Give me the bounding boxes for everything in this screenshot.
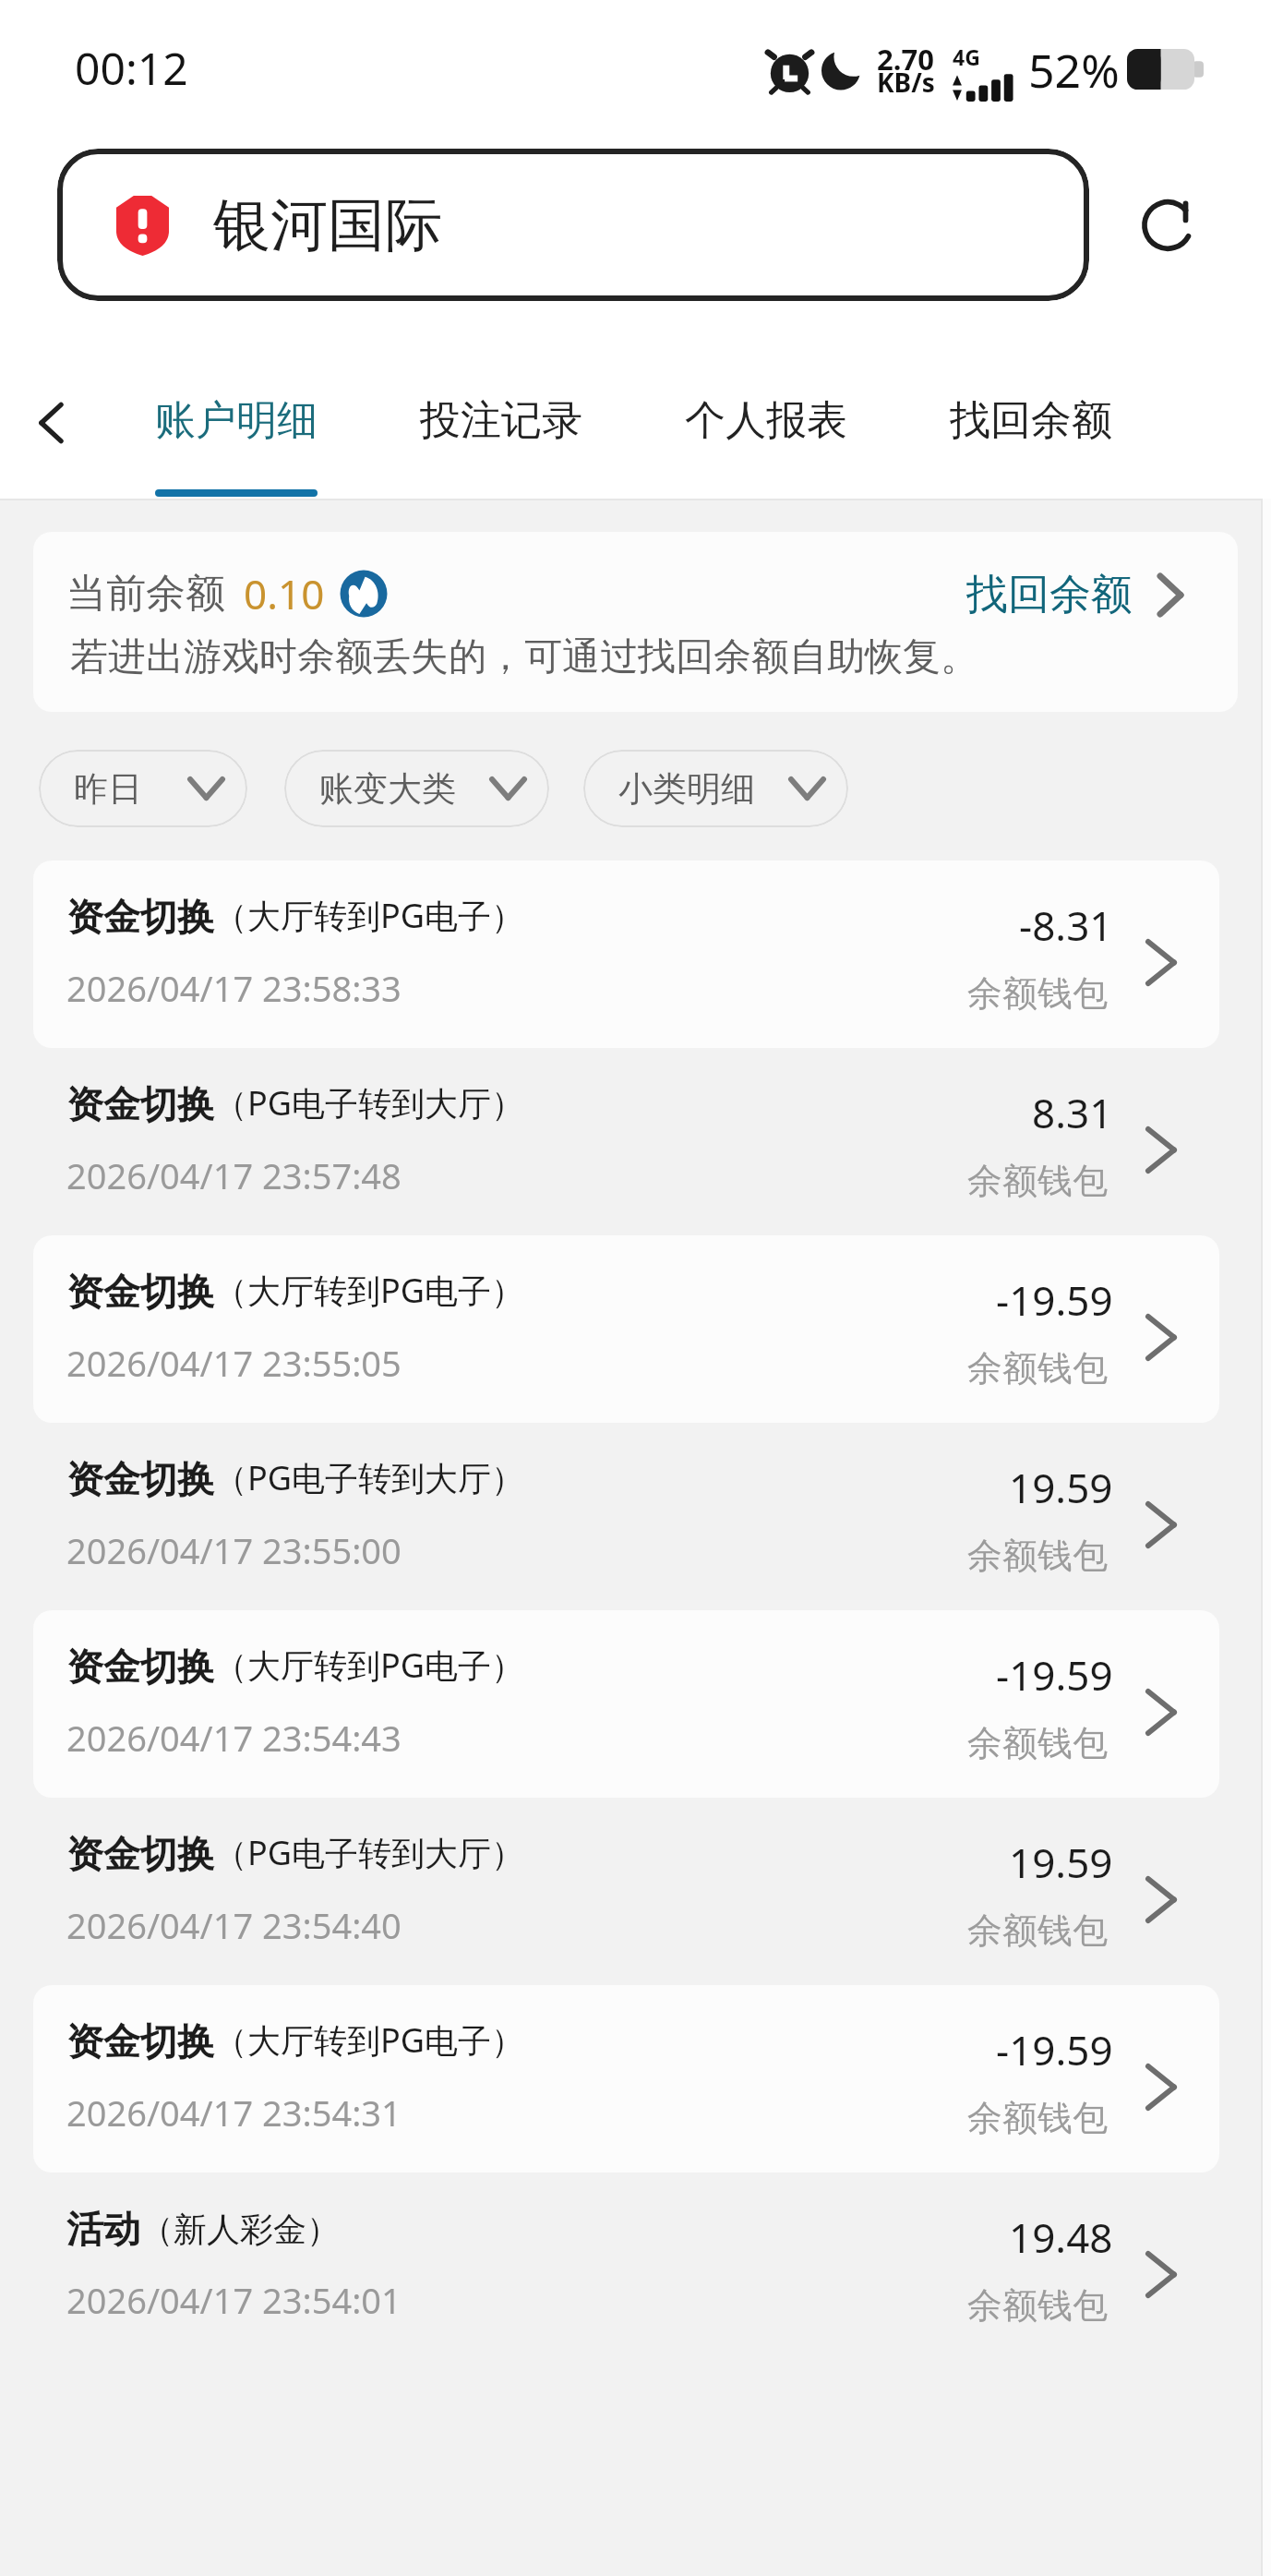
staticText: 若进出游戏时余额丢失的，可通过找回余额自助恢复。 (70, 633, 978, 681)
staticText: 资金切换 (66, 2018, 214, 2064)
staticText: 小类明细 (618, 767, 755, 811)
staticText: 余额钱包 (967, 2283, 1108, 2328)
button[interactable]: 资金切换 (0, 1985, 1271, 2173)
button[interactable]: 活动 (0, 2173, 1271, 2360)
staticText: 当前余额 (66, 569, 225, 619)
staticText: 账户明细 (155, 395, 318, 446)
button[interactable]: 找回余额 (966, 560, 1190, 631)
button[interactable]: 账户明细 (103, 301, 368, 499)
staticText: 资金切换 (66, 1831, 214, 1877)
button[interactable]: 账变大类 (284, 750, 549, 827)
staticText: -19.59 (996, 1272, 1113, 1328)
staticText: 余额钱包 (967, 1908, 1108, 1953)
staticText: 8.31 (1032, 1085, 1113, 1140)
staticText: 0.10 (244, 566, 325, 621)
staticText: -19.59 (996, 2022, 1113, 2077)
button[interactable]: 资金切换 (0, 1798, 1271, 1985)
staticText: 2026/04/17 23:54:40 (66, 1901, 402, 1949)
staticText: 2.70 (877, 40, 934, 78)
staticText: 余额钱包 (967, 1346, 1108, 1390)
staticText: （大厅转到PG电子） (214, 2017, 524, 2063)
button[interactable]: Back (0, 301, 103, 499)
staticText: 2026/04/17 23:58:33 (66, 964, 402, 1012)
staticText: 找回余额 (966, 569, 1133, 621)
staticText: 19.59 (1009, 1835, 1113, 1890)
staticText: 2026/04/17 23:54:31 (66, 2088, 402, 2137)
staticText: 昨日 (74, 767, 142, 811)
button[interactable]: Reload page (1128, 184, 1211, 267)
staticText: 余额钱包 (967, 1721, 1108, 1765)
button[interactable]: 小类明细 (583, 750, 848, 827)
staticText: 2026/04/17 23:54:01 (66, 2276, 402, 2324)
staticText: 资金切换 (66, 1269, 214, 1315)
button[interactable]: 投注记录 (368, 301, 633, 499)
button[interactable]: 找回余额 (898, 301, 1163, 499)
button[interactable]: 资金切换 (0, 1048, 1271, 1235)
staticText: 资金切换 (66, 894, 214, 940)
button[interactable]: Refresh balance (340, 570, 388, 618)
staticText: 余额钱包 (967, 971, 1108, 1016)
button[interactable]: 资金切换 (0, 1610, 1271, 1798)
staticText: 银河国际 (213, 189, 442, 261)
staticText: 19.48 (1009, 2209, 1113, 2265)
staticText: 4G (953, 42, 980, 71)
staticText: 19.59 (1009, 1460, 1113, 1515)
button[interactable]: 当前余额 (33, 532, 1238, 712)
staticText: 余额钱包 (967, 1534, 1108, 1578)
staticText: 2026/04/17 23:55:00 (66, 1526, 402, 1574)
staticText: -8.31 (1019, 897, 1113, 953)
staticText: 余额钱包 (967, 2096, 1108, 2140)
button[interactable]: 个人报表 (633, 301, 898, 499)
staticText: 00:12 (75, 38, 188, 98)
staticText: 个人报表 (685, 395, 847, 446)
staticText: （PG电子转到大厅） (214, 1830, 524, 1875)
staticText: -19.59 (996, 1647, 1113, 1703)
button[interactable]: 银河国际 (57, 149, 1089, 301)
staticText: 资金切换 (66, 1081, 214, 1127)
staticText: 52% (1028, 39, 1120, 102)
staticText: （PG电子转到大厅） (214, 1080, 524, 1125)
staticText: 找回余额 (950, 395, 1112, 446)
staticText: 投注记录 (420, 395, 582, 446)
staticText: （大厅转到PG电子） (214, 1268, 524, 1313)
staticText: 资金切换 (66, 1643, 214, 1690)
button[interactable]: 资金切换 (0, 861, 1271, 1048)
staticText: 账变大类 (319, 767, 456, 811)
button[interactable]: 资金切换 (0, 1235, 1271, 1423)
staticText: 2026/04/17 23:54:43 (66, 1714, 402, 1762)
staticText: KB/s (877, 65, 935, 100)
staticText: 活动 (66, 2206, 140, 2252)
staticText: 2026/04/17 23:55:05 (66, 1339, 402, 1387)
button[interactable]: 昨日 (39, 750, 247, 827)
staticText: 资金切换 (66, 1456, 214, 1502)
staticText: 2026/04/17 23:57:48 (66, 1151, 402, 1199)
staticText: 余额钱包 (967, 1159, 1108, 1203)
button[interactable]: 资金切换 (0, 1423, 1271, 1610)
staticText: （PG电子转到大厅） (214, 1455, 524, 1500)
staticText: （新人彩金） (140, 2209, 340, 2250)
staticText: （大厅转到PG电子） (214, 893, 524, 938)
staticText: （大厅转到PG电子） (214, 1643, 524, 1688)
